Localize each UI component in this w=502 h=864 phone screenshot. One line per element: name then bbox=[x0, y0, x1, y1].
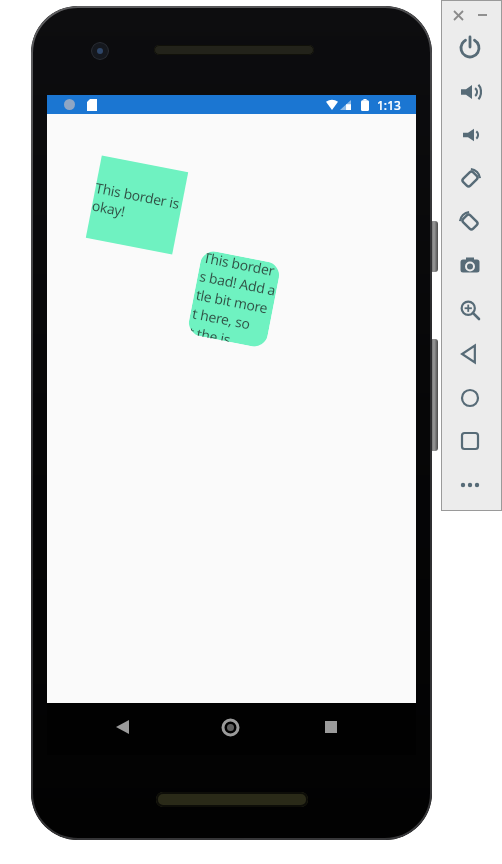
staticText: 1:13 bbox=[377, 97, 401, 113]
button[interactable] bbox=[459, 430, 481, 452]
button[interactable] bbox=[459, 343, 481, 365]
button[interactable] bbox=[459, 387, 481, 409]
staticText: This border s bad! Add a tle bit more t … bbox=[188, 249, 281, 349]
button[interactable] bbox=[222, 719, 239, 736]
button[interactable]: This border is okay! bbox=[86, 155, 188, 255]
button[interactable] bbox=[459, 81, 481, 103]
button[interactable] bbox=[454, 11, 463, 20]
button[interactable] bbox=[459, 211, 481, 233]
button[interactable]: This border s bad! Add a tle bit more t … bbox=[186, 249, 281, 349]
button[interactable] bbox=[116, 720, 129, 734]
button[interactable] bbox=[459, 168, 481, 190]
button[interactable] bbox=[459, 474, 481, 496]
button[interactable] bbox=[459, 124, 481, 146]
button[interactable] bbox=[459, 299, 481, 321]
button[interactable] bbox=[459, 255, 481, 277]
button[interactable] bbox=[459, 37, 481, 59]
staticText: This border is okay! bbox=[90, 178, 190, 232]
